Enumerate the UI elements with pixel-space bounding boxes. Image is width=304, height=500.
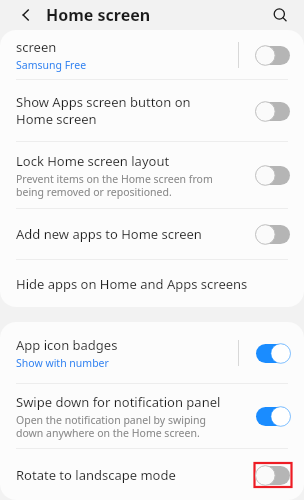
button[interactable]: App icon badges [252,337,294,369]
button[interactable]: Add new apps to Home screen [252,218,294,250]
button[interactable]: Rotate to landscape mode [252,459,294,491]
staticText: Open the notification panel by swiping d… [16,413,207,440]
staticText: screen [16,38,57,56]
button[interactable]: Search [266,1,294,29]
button[interactable]: Lock Home screen layout [0,142,304,208]
staticText: Lock Home screen layout [16,152,170,170]
button[interactable]: Show Apps screen button on Home screen [0,80,304,141]
staticText: Show with number [16,356,109,370]
staticText: Home screen [46,4,151,26]
staticText: Show Apps screen button on Home screen [16,93,191,128]
button[interactable]: Swipe down for notification panel [0,384,304,448]
button[interactable]: screen [252,39,294,71]
button[interactable]: Show Apps screen button on Home screen [252,95,294,127]
button[interactable]: Lock Home screen layout [252,159,294,191]
staticText: Rotate to landscape mode [16,466,176,484]
button[interactable]: Swipe down for notification panel [252,400,294,432]
button[interactable]: Rotate to landscape mode [0,449,304,500]
staticText: Prevent items on the Home screen from be… [16,172,213,199]
button[interactable]: Add new apps to Home screen [0,209,304,259]
button[interactable]: screen [0,30,304,79]
button[interactable]: App icon badges [0,322,304,383]
button[interactable]: Hide apps on Home and Apps screens [0,260,304,307]
staticText: Swipe down for notification panel [16,393,221,411]
staticText: Add new apps to Home screen [16,225,202,243]
staticText: Hide apps on Home and Apps screens [16,275,248,293]
staticText: App icon badges [16,336,118,354]
button[interactable]: Back [12,1,40,29]
staticText: Samsung Free [16,58,87,72]
